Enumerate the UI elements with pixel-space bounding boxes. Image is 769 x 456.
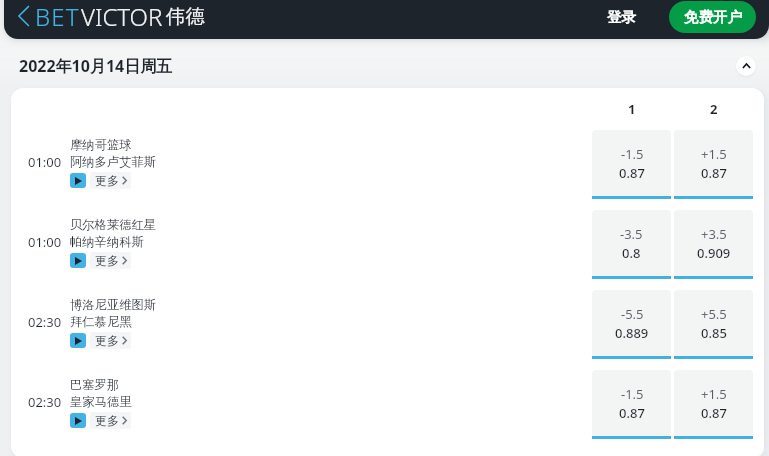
button[interactable]: -1.5 [592,370,671,439]
staticText: 01:00 [28,153,62,171]
button[interactable]: +1.5 [674,130,753,199]
staticText: 博洛尼亚维图斯 [70,297,157,312]
staticText: 0.87 [701,404,727,422]
staticText: +1.5 [701,385,727,403]
button[interactable]: 免费开户 [669,1,756,33]
button[interactable]: 更多 [90,172,131,189]
staticText: 摩纳哥篮球 [70,137,132,152]
staticText: 2022年10月14日周五 [19,55,173,77]
staticText: 登录 [607,8,636,26]
button[interactable]: +3.5 [674,210,753,279]
button[interactable]: Play video [70,173,86,188]
button[interactable]: 更多 [90,332,131,349]
staticText: 阿纳多卢艾菲斯 [70,154,157,169]
staticText: 1 [628,100,636,118]
button[interactable]: Play video [70,413,86,428]
staticText: 0.909 [697,244,731,262]
staticText: 0.87 [619,404,645,422]
staticText: 0.87 [619,164,645,182]
staticText: 更多 [95,253,119,268]
button[interactable]: 更多 [90,252,131,269]
staticText: 帕纳辛纳科斯 [70,234,144,249]
button[interactable]: Play video [70,253,86,268]
staticText: VICTOR [81,0,163,33]
staticText: +1.5 [701,145,727,163]
staticText: +5.5 [701,305,727,323]
staticText: 拜仁慕尼黑 [70,314,132,329]
staticText: 更多 [95,413,119,428]
button[interactable]: -5.5 [592,290,671,359]
staticText: 巴塞罗那 [70,377,120,392]
button[interactable]: -3.5 [592,210,671,279]
staticText: -1.5 [621,145,644,163]
staticText: +3.5 [701,225,727,243]
staticText: 皇家马德里 [70,394,132,409]
staticText: 2 [710,100,718,118]
staticText: 更多 [95,333,119,348]
button[interactable]: 登录 [607,0,636,39]
staticText: 贝尔格莱德红星 [70,217,157,232]
button[interactable]: Back [14,5,33,35]
button[interactable]: Collapse [736,56,756,76]
staticText: 0.8 [622,244,641,262]
staticText: 02:30 [28,313,62,331]
button[interactable]: +1.5 [674,370,753,439]
staticText: BET [35,0,80,33]
staticText: -1.5 [621,385,644,403]
button[interactable]: 更多 [90,412,131,429]
button[interactable]: +5.5 [674,290,753,359]
staticText: 02:30 [28,393,62,411]
staticText: 01:00 [28,233,62,251]
button[interactable]: -1.5 [592,130,671,199]
staticText: 更多 [95,173,119,188]
staticText: 0.87 [701,164,727,182]
staticText: -5.5 [621,305,644,323]
staticText: 0.85 [701,324,727,342]
button[interactable]: Play video [70,333,86,348]
staticText: -3.5 [620,225,643,243]
staticText: 免费开户 [684,8,742,26]
staticText: 伟德 [166,4,205,29]
staticText: 0.889 [615,324,649,342]
